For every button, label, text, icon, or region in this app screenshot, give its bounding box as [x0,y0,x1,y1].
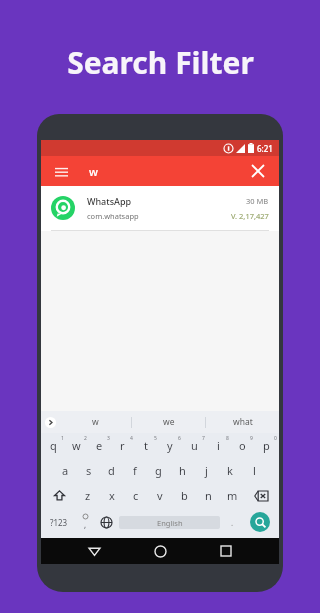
button[interactable]: b [172,483,196,508]
button[interactable]: s [77,458,100,483]
staticText: . [231,517,234,528]
staticText: a [62,463,69,478]
staticText: s [86,463,92,478]
button[interactable]: what [206,411,279,433]
staticText: 8 [226,435,229,442]
button[interactable]: w [59,411,131,433]
staticText: 1 [61,435,64,442]
button[interactable]: i [206,433,230,458]
button[interactable]: o [230,433,254,458]
button[interactable]: English [119,516,220,529]
button[interactable]: we [132,411,205,433]
button[interactable]: m [220,483,244,508]
staticText: English [157,518,183,528]
staticText: f [133,463,137,478]
button[interactable]: y [158,433,182,458]
staticText: , [84,519,87,530]
staticText: w [72,438,81,453]
staticText: e [96,438,103,453]
button[interactable]: Expand suggestions [41,411,59,433]
staticText: 2 [84,435,87,442]
staticText: n [205,488,212,503]
staticText: t [144,438,148,453]
staticText: b [181,488,188,503]
staticText: c [133,488,139,503]
button[interactable]: n [196,483,220,508]
staticText: m [227,488,238,503]
staticText: 3 [107,435,110,442]
staticText: 4 [130,435,133,442]
staticText: what [233,416,253,428]
button[interactable]: r [111,433,134,458]
button[interactable]: k [218,458,242,483]
button[interactable]: d [100,458,123,483]
button[interactable]: t [134,433,158,458]
staticText: l [253,463,256,478]
button[interactable]: WhatsApp [41,186,279,230]
button[interactable]: u [182,433,206,458]
staticText: w [92,416,99,428]
button[interactable]: p [254,433,278,458]
staticText: ?123 [50,517,68,528]
button[interactable]: q [42,433,65,458]
staticText: Search Filter [67,42,254,83]
button[interactable]: e [88,433,111,458]
button[interactable]: h [170,458,194,483]
button[interactable]: Menu [51,161,71,181]
staticText: j [205,463,208,478]
staticText: WhatsApp [87,195,132,207]
staticText: d [108,463,115,478]
button[interactable]: Shift [42,483,76,508]
button[interactable]: c [124,483,148,508]
staticText: 30 MB [246,196,269,206]
button[interactable]: g [146,458,170,483]
staticText: V. 2,17,427 [231,211,269,221]
staticText: p [263,438,270,453]
staticText: q [50,438,57,453]
button[interactable]: a [54,458,77,483]
button[interactable]: j [194,458,218,483]
button[interactable]: f [123,458,146,483]
button[interactable]: Comma [75,508,96,536]
staticText: we [163,416,175,428]
button[interactable]: v [148,483,172,508]
button[interactable]: l [242,458,266,483]
button[interactable]: w [65,433,88,458]
staticText: 5 [154,435,157,442]
staticText: 7 [202,435,205,442]
staticText: v [157,488,163,503]
button[interactable]: Recents [213,538,239,564]
staticText: h [179,463,186,478]
staticText: i [217,438,220,453]
button[interactable]: z [76,483,100,508]
staticText: o [239,438,246,453]
staticText: u [191,438,198,453]
button[interactable]: Change language [96,508,117,536]
button[interactable]: Home [147,538,173,564]
staticText: z [85,488,91,503]
staticText: x [109,488,115,503]
button[interactable]: Backspace [244,483,278,508]
button[interactable]: ?123 [43,508,75,536]
staticText: k [227,463,233,478]
button[interactable]: Close [247,160,269,182]
button[interactable]: Back [81,538,107,564]
staticText: 9 [250,435,253,442]
staticText: 6:21 [257,143,273,154]
staticText: 6 [178,435,181,442]
staticText: com.whatsapp [87,211,139,221]
staticText: r [120,438,125,453]
staticText: g [155,463,162,478]
staticText: w [89,164,98,179]
staticText: y [167,438,173,453]
button[interactable]: x [100,483,124,508]
button[interactable]: Search [243,508,277,536]
staticText: 0 [274,435,277,442]
